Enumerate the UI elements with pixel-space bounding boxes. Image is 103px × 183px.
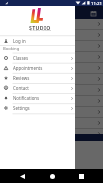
staticText: STUDIO xyxy=(29,24,51,31)
button[interactable] xyxy=(0,30,103,40)
button[interactable] xyxy=(0,19,103,29)
staticText: Booking xyxy=(3,46,20,52)
staticText: Notifications xyxy=(13,95,40,101)
button[interactable]: Notifications xyxy=(0,93,75,103)
button[interactable]: Log in xyxy=(0,36,75,45)
button[interactable] xyxy=(0,52,103,62)
button[interactable] xyxy=(0,41,103,51)
staticText: Appointments xyxy=(13,65,43,71)
staticText: Reviews xyxy=(13,75,30,81)
button[interactable]: Home xyxy=(45,169,59,183)
staticText: 11:21 xyxy=(91,0,102,6)
button[interactable]: Reviews xyxy=(0,73,75,83)
button[interactable] xyxy=(0,63,103,73)
button[interactable]: Recents xyxy=(74,169,88,183)
button[interactable]: Appointments xyxy=(0,63,75,73)
button[interactable] xyxy=(0,96,103,106)
button[interactable] xyxy=(0,129,103,139)
staticText: FITNESS STUDIO xyxy=(30,29,52,32)
button[interactable] xyxy=(0,118,103,128)
button[interactable]: Calendar xyxy=(88,8,99,19)
button[interactable]: Contact xyxy=(0,83,75,93)
button[interactable] xyxy=(0,85,103,95)
button[interactable]: Back xyxy=(15,169,29,183)
staticText: Log in xyxy=(13,38,26,44)
button[interactable]: Classes xyxy=(0,53,75,63)
button[interactable] xyxy=(0,107,103,117)
staticText: Contact xyxy=(13,85,29,91)
button[interactable]: Settings xyxy=(0,103,75,113)
staticText: Classes xyxy=(13,55,29,61)
staticText: Settings xyxy=(13,105,30,111)
button[interactable] xyxy=(0,74,103,84)
